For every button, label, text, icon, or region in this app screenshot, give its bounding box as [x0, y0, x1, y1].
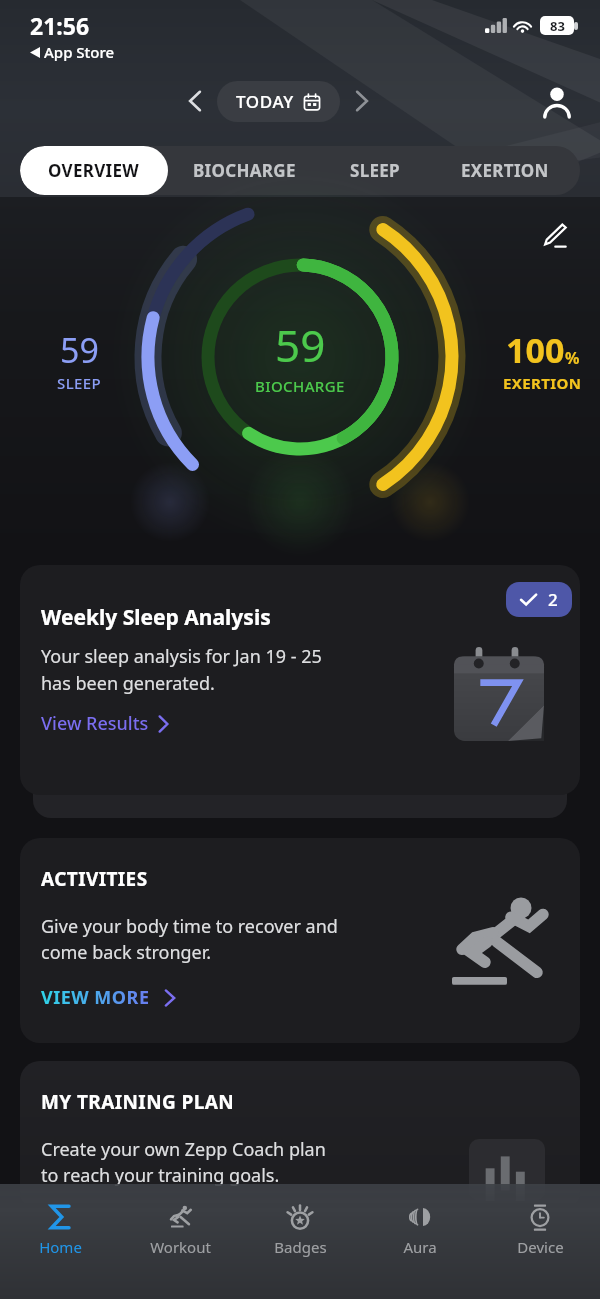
staticText: OVERVIEW [48, 159, 140, 182]
staticText: 21:56 [30, 10, 90, 41]
staticText: 100 [506, 327, 565, 373]
staticText: BIOCHARGE [255, 376, 345, 396]
button[interactable]: EXERTION [429, 146, 580, 195]
button[interactable]: BIOCHARGE [168, 146, 320, 195]
staticText: Create your own Zepp Coach plan to reach… [41, 1137, 326, 1188]
button[interactable]: Aura [360, 1198, 480, 1261]
staticText: VIEW MORE [41, 985, 150, 1010]
button[interactable]: SLEEP [320, 146, 429, 195]
button[interactable]: View Results [41, 711, 169, 736]
staticText: Give your body time to recover and come … [41, 914, 338, 965]
button[interactable]: TODAY [217, 81, 340, 122]
button[interactable]: Edit [534, 215, 574, 255]
button[interactable]: Profile [534, 78, 580, 124]
button[interactable]: Home [0, 1198, 120, 1261]
staticText: EXERTION [461, 159, 549, 182]
staticText: TODAY [236, 90, 294, 113]
button[interactable]: Workout [120, 1198, 240, 1261]
button[interactable]: 2 [506, 582, 572, 617]
button[interactable]: Badges [240, 1198, 360, 1261]
button[interactable]: ACTIVITIES [20, 838, 580, 1043]
staticText: EXERTION [503, 373, 582, 393]
staticText: Aura [403, 1237, 437, 1257]
staticText: ACTIVITIES [41, 866, 148, 892]
staticText: BIOCHARGE [193, 159, 296, 182]
staticText: Device [517, 1237, 564, 1257]
staticText: SLEEP [350, 159, 400, 182]
staticText: Workout [150, 1237, 211, 1257]
button[interactable]: Next day [342, 81, 382, 121]
button[interactable]: OVERVIEW [20, 146, 168, 195]
staticText: MY TRAINING PLAN [41, 1089, 235, 1115]
staticText: 59 [275, 315, 326, 375]
staticText: Weekly Sleep Analysis [41, 603, 271, 632]
staticText: Badges [274, 1237, 327, 1257]
button[interactable]: Previous day [175, 81, 215, 121]
button[interactable]: MY TRAINING PLAN [20, 1061, 580, 1211]
staticText: 59 [60, 327, 99, 373]
button[interactable]: Device [480, 1198, 600, 1261]
button[interactable]: 2 [20, 565, 580, 795]
staticText: % [565, 347, 580, 369]
staticText: Your sleep analysis for Jan 19 - 25 has … [41, 644, 322, 695]
staticText: Home [39, 1237, 82, 1257]
button[interactable]: VIEW MORE [41, 985, 176, 1010]
staticText: 83 [550, 17, 565, 35]
staticText: 2 [548, 588, 558, 611]
staticText: SLEEP [57, 373, 102, 393]
staticText: View Results [41, 711, 149, 736]
staticText: App Store [44, 42, 115, 62]
